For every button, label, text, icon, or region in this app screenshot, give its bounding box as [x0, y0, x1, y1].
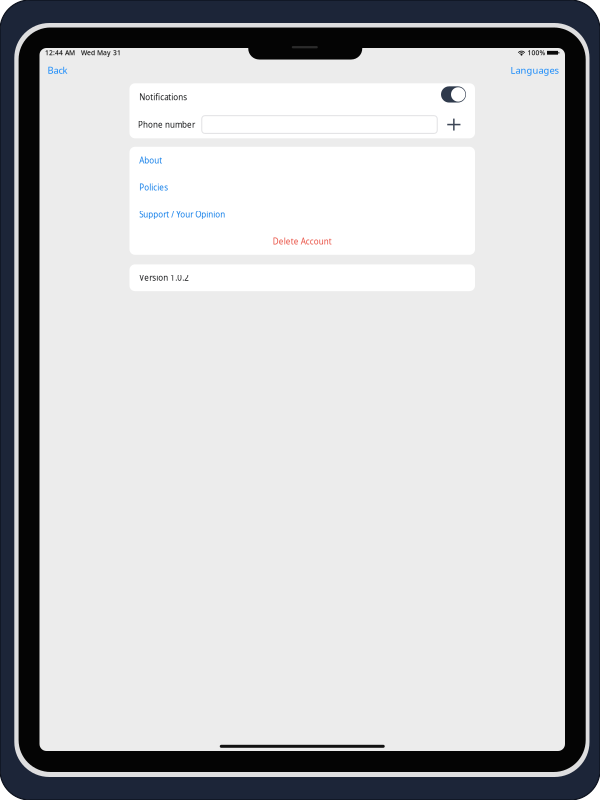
button[interactable]: Policies [129, 174, 475, 201]
staticText: Phone number [138, 119, 195, 130]
staticText: 12:44 AM [45, 48, 75, 57]
button[interactable]: Support / Your Opinion [129, 201, 475, 228]
button[interactable]: Delete Account [129, 228, 475, 255]
staticText: Back [47, 64, 67, 76]
staticText: Languages [510, 64, 558, 76]
button[interactable]: Back [45, 60, 69, 80]
staticText: 100% [527, 48, 545, 57]
staticText: Notifications [139, 92, 187, 102]
staticText: Wed May 31 [81, 48, 121, 57]
staticText: Delete Account [273, 236, 332, 247]
staticText: Policies [139, 182, 168, 193]
staticText: About [139, 155, 162, 166]
button[interactable]: Notifications [439, 81, 468, 108]
button[interactable]: About [129, 147, 475, 174]
button[interactable]: Languages [508, 60, 560, 80]
button[interactable]: Add phone number [445, 113, 462, 136]
staticText: Support / Your Opinion [139, 209, 225, 220]
staticText: Version 1.0.2 [139, 272, 189, 283]
